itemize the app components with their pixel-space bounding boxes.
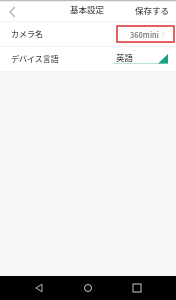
staticText: 360mini: [130, 29, 159, 40]
button[interactable]: カメラ名: [0, 22, 176, 46]
staticText: 保存する: [135, 4, 170, 16]
staticText: デバイス言語: [11, 53, 59, 65]
button[interactable]: Back: [1, 2, 23, 21]
button[interactable]: Home: [76, 276, 100, 300]
staticText: カメラ名: [11, 28, 43, 40]
staticText: 基本設定: [70, 3, 105, 15]
button[interactable]: 保存する: [135, 0, 170, 19]
staticText: 英語: [116, 51, 134, 63]
button[interactable]: デバイス言語: [0, 47, 176, 71]
button[interactable]: Back: [27, 276, 51, 300]
button[interactable]: Recent apps: [125, 276, 149, 300]
